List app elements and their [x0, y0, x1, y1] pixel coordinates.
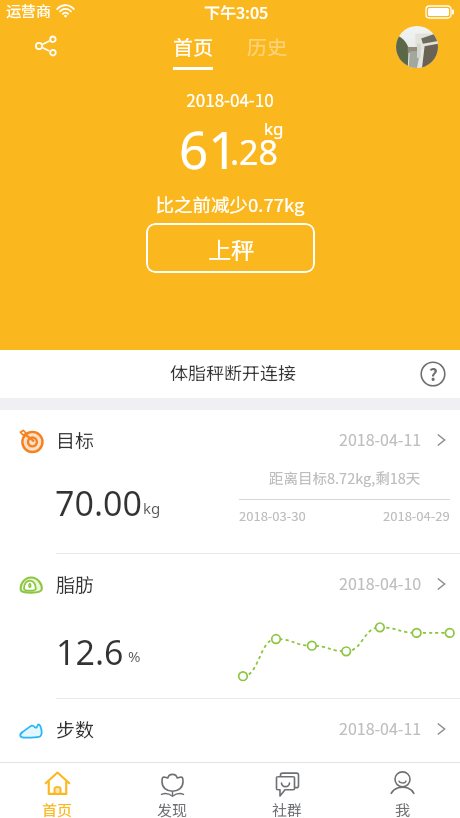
- staticText: 70.00: [55, 480, 142, 526]
- staticText: 2018-04-10: [0, 87, 460, 112]
- button[interactable]: 步数: [0, 699, 460, 759]
- staticText: 距离目标8.72kg,剩18天: [269, 467, 421, 488]
- staticText: 2018-03-30: [239, 506, 306, 525]
- staticText: 脂肪: [56, 570, 95, 598]
- button[interactable]: 发现: [115, 763, 230, 818]
- staticText: 步数: [56, 715, 95, 743]
- button[interactable]: 体脂秤断开连接: [0, 350, 460, 398]
- button[interactable]: 目标: [0, 410, 460, 553]
- staticText: .28: [230, 129, 279, 175]
- button[interactable]: Share: [30, 30, 62, 62]
- button[interactable]: 首页: [162, 32, 224, 70]
- button[interactable]: 我: [345, 763, 460, 818]
- staticText: kg: [143, 498, 161, 518]
- staticText: 社群: [272, 799, 303, 818]
- button[interactable]: 历史: [236, 32, 298, 61]
- staticText: 上秤: [208, 232, 254, 265]
- staticText: 2018-04-10: [339, 571, 422, 594]
- staticText: 目标: [56, 426, 95, 454]
- staticText: 比之前减少0.77kg: [0, 191, 460, 218]
- button[interactable]: 脂肪: [0, 554, 460, 698]
- staticText: 2018-04-11: [339, 716, 422, 739]
- staticText: 历史: [247, 32, 287, 61]
- staticText: 2018-04-11: [339, 427, 422, 450]
- button[interactable]: Profile: [396, 26, 438, 68]
- staticText: 61: [179, 114, 238, 174]
- staticText: 运营商: [6, 0, 52, 22]
- staticText: 发现: [157, 799, 188, 818]
- staticText: 2018-04-29: [383, 506, 450, 525]
- staticText: 首页: [42, 799, 73, 818]
- staticText: ?: [429, 361, 438, 386]
- button[interactable]: 社群: [230, 763, 345, 818]
- staticText: 体脂秤断开连接: [170, 359, 296, 385]
- staticText: 12.6: [56, 629, 124, 675]
- button[interactable]: 首页: [0, 763, 115, 818]
- staticText: 我: [395, 799, 411, 818]
- button[interactable]: 上秤: [146, 223, 315, 273]
- staticText: kg: [264, 117, 284, 140]
- staticText: 首页: [173, 32, 213, 61]
- staticText: 下午3:05: [204, 0, 269, 23]
- button[interactable]: Help: [420, 361, 446, 387]
- staticText: %: [128, 646, 141, 666]
